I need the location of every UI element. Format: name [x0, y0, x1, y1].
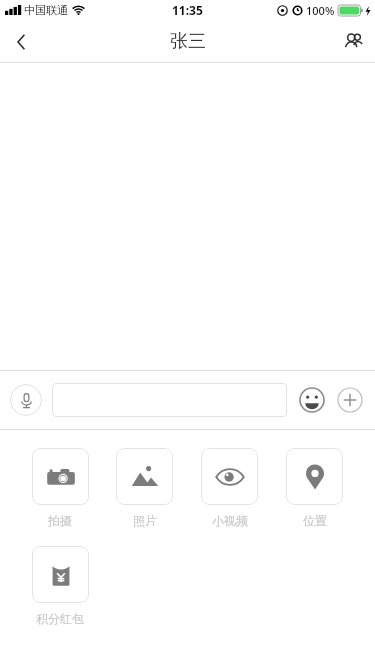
button[interactable]: Back [0, 20, 44, 63]
button[interactable]: 小视频 [187, 448, 272, 528]
staticText: 拍摄 [48, 513, 72, 528]
staticText: 100% [306, 3, 335, 18]
button[interactable]: 位置 [272, 448, 357, 528]
staticText: 小视频 [212, 513, 248, 528]
button[interactable]: 拍摄 [18, 448, 102, 528]
button[interactable]: 积分红包 [18, 546, 102, 626]
button[interactable]: Message input [52, 383, 287, 417]
staticText: 照片 [133, 513, 157, 528]
staticText: 张三 [170, 30, 206, 53]
button[interactable]: Contact info [331, 20, 375, 63]
button[interactable]: More [335, 385, 365, 415]
staticText: 积分红包 [36, 611, 84, 626]
button[interactable]: Emoji [297, 385, 327, 415]
button[interactable]: Voice input [10, 384, 42, 416]
staticText: 11:35 [172, 2, 203, 18]
button[interactable]: 照片 [102, 448, 187, 528]
staticText: 位置 [303, 513, 327, 528]
staticText: 中国联通 [24, 3, 68, 17]
